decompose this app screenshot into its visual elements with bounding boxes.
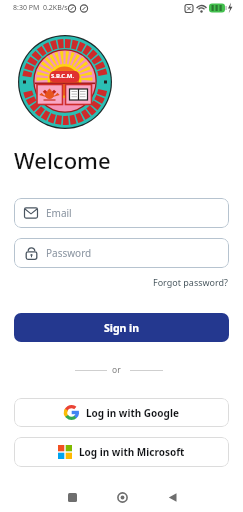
button[interactable]: Log in with Microsoft	[14, 437, 229, 467]
staticText: Welcome	[14, 145, 111, 175]
staticText: Log in with Microsoft	[79, 445, 185, 459]
button[interactable]: Password	[14, 238, 229, 268]
staticText: Sign in	[104, 321, 140, 335]
button[interactable]: Log in with Google	[14, 398, 229, 427]
button[interactable]	[52, 482, 92, 512]
staticText: Log in with Google	[86, 406, 179, 420]
button[interactable]: Forgot password?	[153, 276, 229, 288]
staticText: Password	[46, 246, 92, 260]
staticText: 8:30 PM 0.2KB/s	[13, 3, 68, 13]
staticText: or	[112, 364, 121, 376]
staticText: S.B.C.M.	[51, 72, 75, 80]
staticText: Email	[46, 206, 72, 220]
button[interactable]	[102, 482, 142, 512]
button[interactable]: Email	[14, 198, 229, 228]
button[interactable]	[152, 482, 192, 512]
button[interactable]: Sign in	[14, 313, 229, 342]
